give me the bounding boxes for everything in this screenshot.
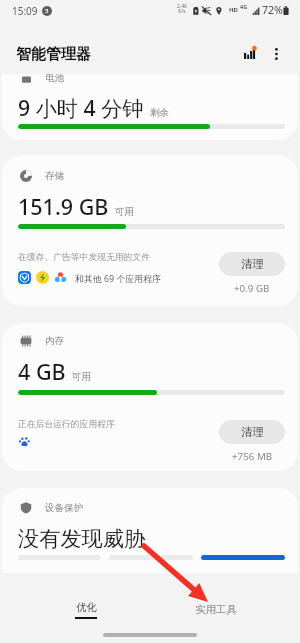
staticText: 电池 (45, 74, 65, 84)
staticText: 智能管理器 (16, 45, 91, 64)
staticText: HD (229, 6, 238, 14)
staticText: 清理 (241, 425, 264, 439)
button[interactable]: 清理 (219, 420, 285, 444)
button[interactable]: 实用工具 (186, 603, 246, 631)
button[interactable]: 设备保护 (2, 488, 298, 573)
staticText: 4G (240, 3, 248, 10)
button[interactable]: 内存 (2, 323, 298, 471)
staticText: 可用 (115, 206, 135, 218)
staticText: 2.46 K/s (177, 3, 187, 15)
staticText: 4 GB (18, 357, 66, 386)
staticText: +756 MB (232, 450, 273, 463)
button[interactable]: 优化 (56, 601, 116, 629)
button[interactable]: 电池 (2, 74, 298, 140)
staticText: 实用工具 (195, 603, 237, 616)
staticText: 3 (45, 7, 49, 15)
staticText: 72% (262, 3, 283, 17)
button[interactable]: 存储 (2, 155, 298, 306)
staticText: 在缓存、广告等中发现无用的文件 (18, 252, 150, 263)
staticText: 没有发现威胁 (18, 526, 146, 553)
staticText: 151.9 GB (18, 192, 109, 221)
staticText: +0.9 GB (234, 282, 270, 295)
button[interactable]: More options (264, 40, 289, 65)
staticText: 剩余 (150, 107, 170, 119)
staticText: 设备保护 (45, 502, 84, 514)
staticText: 15:09 (12, 4, 38, 18)
staticText: 内存 (45, 335, 65, 347)
staticText: 9 小时 4 分钟 (18, 93, 144, 122)
staticText: 优化 (76, 601, 97, 614)
staticText: 正在后台运行的应用程序 (18, 419, 115, 430)
staticText: 存储 (45, 170, 65, 182)
staticText: 清理 (241, 257, 264, 271)
staticText: 可用 (72, 371, 92, 383)
button[interactable]: 清理 (219, 252, 285, 276)
staticText: 和其他 69 个应用程序 (75, 272, 161, 284)
button[interactable]: Usage statistics (236, 40, 263, 67)
